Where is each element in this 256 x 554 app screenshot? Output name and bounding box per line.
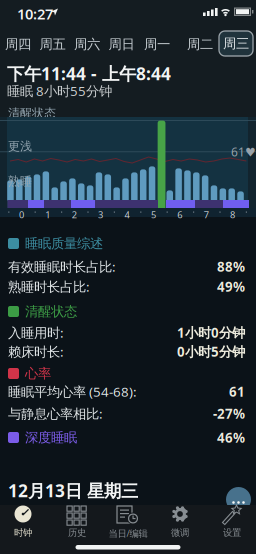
staticText: 61♥: [231, 144, 256, 160]
staticText: 微调: [171, 527, 189, 538]
staticText: 当日/编辑: [108, 527, 147, 539]
staticText: 清醒状态: [8, 106, 56, 121]
staticText: 6: [177, 208, 182, 221]
staticText: 熟睡: [8, 174, 32, 189]
staticText: 61: [229, 383, 245, 400]
staticText: 88%: [217, 258, 245, 275]
staticText: 有效睡眠时长占比:: [8, 258, 116, 275]
staticText: 5: [151, 208, 156, 221]
staticText: -27%: [213, 405, 245, 422]
staticText: 更浅: [8, 139, 32, 154]
staticText: 周三: [223, 35, 249, 52]
staticText: 12月13日 星期三: [8, 479, 138, 502]
button[interactable]: 历史: [54, 505, 100, 539]
button[interactable]: 微调: [157, 505, 203, 539]
staticText: 设置: [223, 527, 241, 538]
button[interactable]: 周六: [72, 36, 102, 52]
button[interactable]: 周四: [3, 36, 33, 52]
button[interactable]: 周二: [185, 36, 215, 52]
staticText: 赖床时长:: [8, 343, 64, 360]
staticText: 1小时0分钟: [177, 324, 245, 341]
staticText: 7: [204, 208, 209, 221]
staticText: 0小时5分钟: [177, 343, 245, 360]
staticText: 周五: [39, 36, 65, 52]
staticText: 心率: [25, 365, 51, 382]
button[interactable]: 当日/编辑: [105, 505, 151, 539]
staticText: 49%: [217, 278, 245, 295]
button[interactable]: 周三: [219, 31, 253, 56]
button[interactable]: 时钟: [0, 505, 46, 539]
button[interactable]: 周日: [106, 36, 136, 52]
staticText: 周二: [187, 36, 213, 52]
staticText: 睡眠平均心率 (54-68):: [8, 383, 137, 400]
staticText: 周一: [144, 36, 170, 52]
staticText: 2: [72, 208, 77, 221]
staticText: 深度睡眠: [25, 429, 77, 446]
staticText: 睡眠质量综述: [25, 235, 103, 252]
staticText: 历史: [68, 527, 86, 538]
staticText: 3: [98, 208, 103, 221]
staticText: 10:27: [17, 4, 53, 23]
staticText: 8: [230, 208, 235, 221]
staticText: 周日: [108, 36, 134, 52]
staticText: 熟睡时长占比:: [8, 278, 90, 295]
staticText: 时钟: [14, 527, 32, 538]
staticText: 入睡用时:: [8, 324, 64, 341]
staticText: 0: [19, 208, 24, 221]
staticText: 4: [124, 208, 129, 221]
staticText: 周四: [5, 36, 31, 52]
staticText: 1: [45, 208, 50, 221]
staticText: 46%: [217, 429, 245, 446]
button[interactable]: 周一: [142, 36, 172, 52]
staticText: 与静息心率相比:: [8, 405, 103, 422]
button[interactable]: 设置: [209, 505, 255, 539]
staticText: 清醒状态: [25, 303, 77, 320]
staticText: 周六: [74, 36, 100, 52]
button[interactable]: 更多: [226, 487, 251, 512]
staticText: 下午11:44 - 上午8:44: [7, 62, 171, 85]
button[interactable]: 周五: [37, 36, 67, 52]
staticText: 睡眠 8小时55分钟: [7, 82, 112, 100]
